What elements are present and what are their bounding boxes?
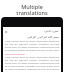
staticText: Multiple translations: [16, 3, 48, 16]
staticText: بسم الله الرحمن الرحيم: [5, 35, 59, 39]
staticText: ☰: [5, 30, 8, 33]
staticText: Lorem ipsum dolor sit amet consectetur a…: [5, 56, 59, 71]
staticText: سورة البقرة: [44, 29, 59, 33]
staticText: Sahih International: [5, 53, 59, 56]
staticText: Lorem ipsum dolor sit amet consectetur a…: [5, 40, 59, 52]
button[interactable]: ☰: [1, 17, 63, 72]
